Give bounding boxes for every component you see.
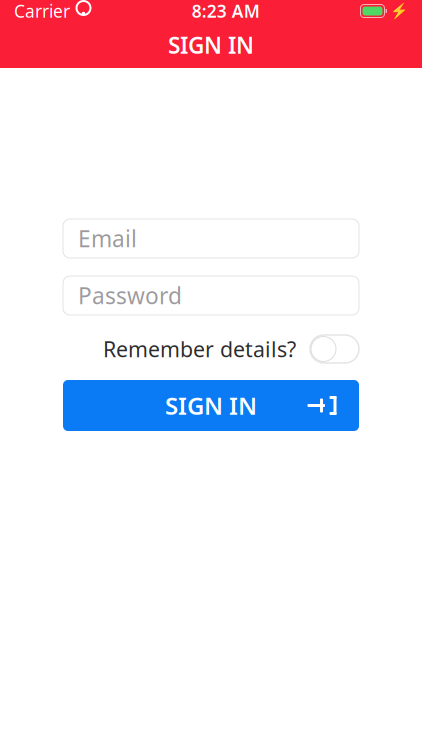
- staticText: 8:23 AM: [192, 0, 260, 22]
- staticText: Password: [78, 280, 182, 310]
- staticText: SIGN IN: [168, 30, 254, 60]
- staticText: Remember details?: [103, 335, 296, 363]
- staticText: SIGN IN: [165, 390, 257, 421]
- staticText: ⚡: [390, 3, 408, 19]
- button[interactable]: Remember details?: [103, 335, 359, 363]
- button[interactable]: SIGN IN: [63, 380, 359, 431]
- staticText: Carrier: [14, 0, 70, 22]
- staticText: Email: [78, 223, 137, 253]
